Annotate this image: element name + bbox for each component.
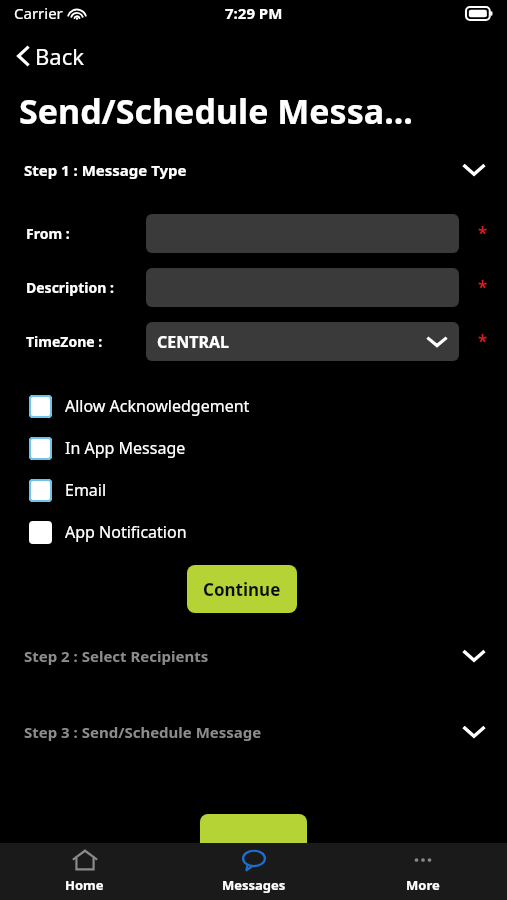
button[interactable]: App Notification [0,511,507,553]
staticText: * [478,330,488,353]
staticText: In App Message [65,437,186,459]
button[interactable]: In App Message [0,427,507,469]
button[interactable]: Continue [187,565,297,613]
staticText: Step 2 : Select Recipients [24,646,209,666]
staticText: Description : [26,278,114,297]
button[interactable]: CENTRAL [146,322,459,361]
staticText: CENTRAL [157,331,229,353]
button[interactable] [200,814,307,854]
button[interactable]: Allow Acknowledgement [0,385,507,427]
staticText: Carrier [14,3,63,23]
button[interactable]: Step 2 : Select Recipients [0,642,507,670]
staticText: Send/Schedule Messa... [19,88,413,134]
staticText: Continue [203,578,281,601]
staticText: App Notification [65,521,187,543]
button[interactable]: Email [0,469,507,511]
staticText: Back [35,41,84,71]
staticText: Home [65,876,104,894]
staticText: Messages [222,876,286,894]
staticText: Step 3 : Send/Schedule Message [24,722,262,742]
staticText: Step 1 : Message Type [24,160,187,180]
staticText: * [478,276,488,299]
staticText: Email [65,479,107,501]
staticText: More [406,876,440,894]
staticText: 7:29 PM [225,3,283,23]
button[interactable]: More [338,849,507,894]
staticText: * [478,222,488,245]
staticText: TimeZone : [26,332,103,351]
staticText: From : [26,224,70,243]
staticText: Allow Acknowledgement [65,395,250,417]
button[interactable]: Step 3 : Send/Schedule Message [0,718,507,746]
button[interactable]: Back [12,38,88,74]
button[interactable]: Messages [169,849,338,894]
button[interactable]: Home [0,849,169,894]
button[interactable]: Step 1 : Message Type [0,156,507,184]
